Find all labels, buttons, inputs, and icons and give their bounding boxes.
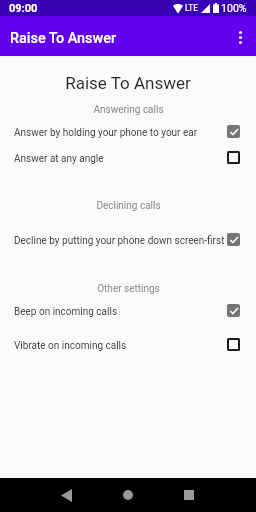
staticText: Declining calls: [96, 200, 161, 212]
staticText: LTE: [185, 3, 198, 13]
button[interactable]: Recent apps: [177, 483, 201, 507]
staticText: Decline by putting your phone down scree…: [14, 235, 225, 247]
staticText: 100%: [221, 2, 247, 14]
staticText: Other settings: [97, 283, 160, 295]
staticText: Answering calls: [93, 104, 164, 116]
button[interactable]: Decline by putting your phone down scree…: [0, 228, 256, 250]
button[interactable]: Answer at any angle: [0, 146, 256, 168]
button[interactable]: Vibrate on incoming calls: [0, 333, 256, 355]
staticText: 09:00: [9, 2, 38, 15]
staticText: Raise To Answer: [65, 73, 191, 93]
button[interactable]: Beep on incoming calls: [0, 299, 256, 321]
staticText: Answer at any angle: [14, 153, 225, 165]
button[interactable]: More options: [224, 20, 256, 52]
button[interactable]: Back: [54, 483, 78, 507]
staticText: Raise To Answer: [10, 30, 116, 47]
staticText: Answer by holding your phone to your ear: [14, 127, 225, 139]
button[interactable]: Home: [116, 483, 140, 507]
staticText: Vibrate on incoming calls: [14, 340, 225, 352]
staticText: Beep on incoming calls: [14, 306, 225, 318]
button[interactable]: Answer by holding your phone to your ear: [0, 120, 256, 142]
